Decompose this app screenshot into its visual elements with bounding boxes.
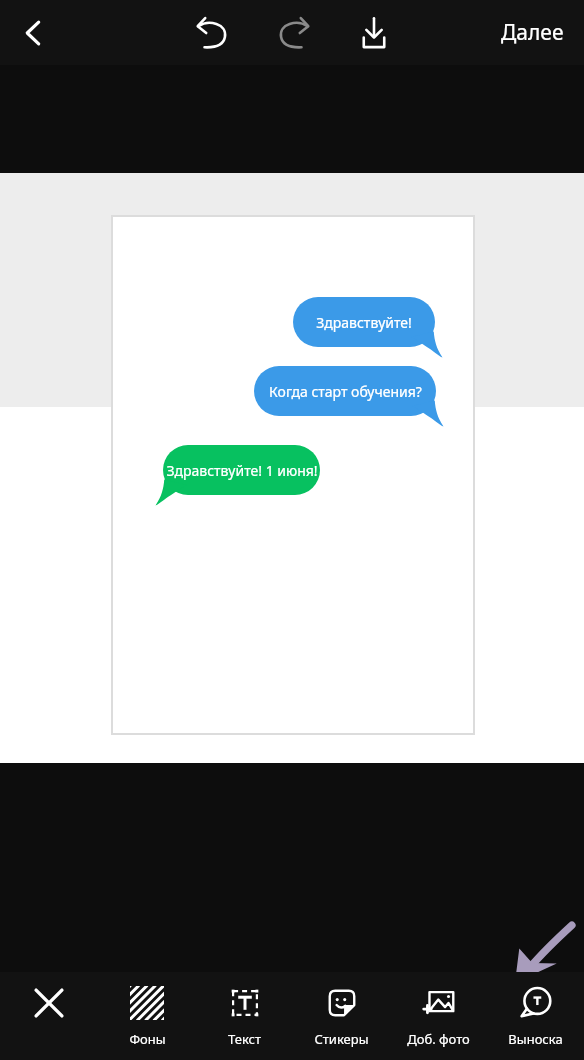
staticText: Стикеры xyxy=(314,1030,369,1048)
button[interactable]: Далее xyxy=(485,8,580,57)
button[interactable]: Доб. фото xyxy=(390,972,487,1060)
button[interactable]: Стикеры xyxy=(293,972,390,1060)
staticText: Текст xyxy=(228,1030,261,1048)
button[interactable]: Текст xyxy=(196,972,293,1060)
staticText: Доб. фото xyxy=(407,1030,470,1048)
button[interactable]: Redo xyxy=(266,5,322,61)
button[interactable]: Undo xyxy=(184,5,240,61)
staticText: Здравствуйте! xyxy=(316,313,412,332)
button[interactable]: Фоны xyxy=(98,972,196,1060)
staticText: Далее xyxy=(501,18,564,47)
button[interactable]: Back xyxy=(6,5,62,61)
staticText: Выноска xyxy=(508,1030,563,1048)
staticText: Фоны xyxy=(129,1030,166,1048)
button[interactable]: Close xyxy=(0,972,98,1060)
button[interactable]: Save xyxy=(346,5,402,61)
staticText: Здравствуйте! 1 июня! xyxy=(166,461,318,480)
staticText: Когда старт обучения? xyxy=(269,382,422,401)
button[interactable]: Выноска xyxy=(487,972,584,1060)
